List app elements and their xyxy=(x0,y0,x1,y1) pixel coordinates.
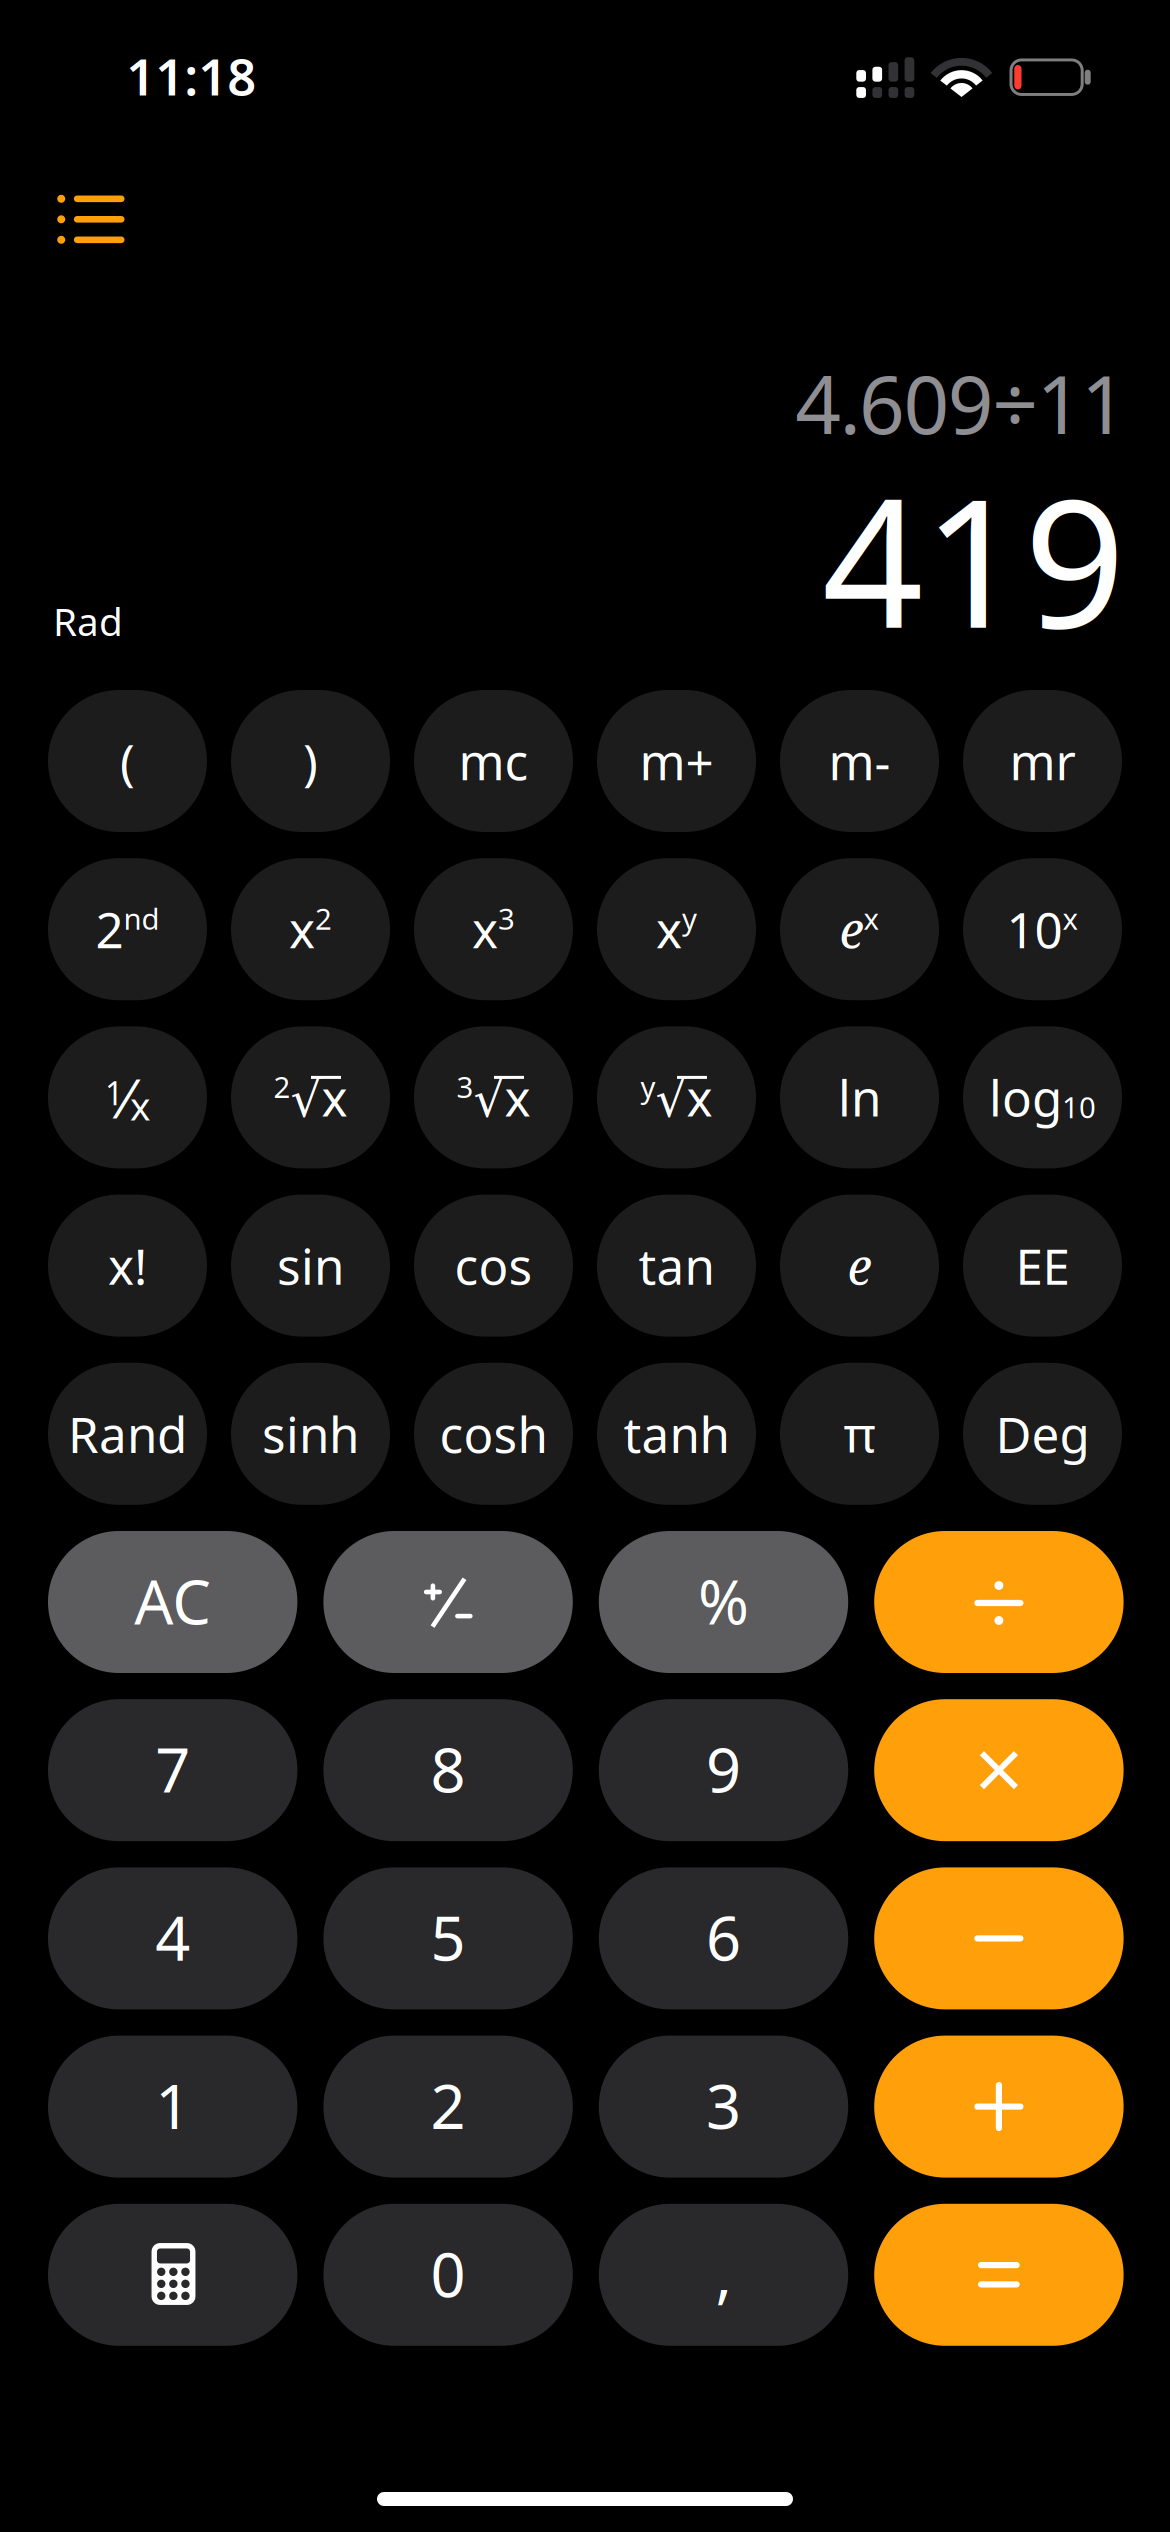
button[interactable]: ln xyxy=(780,1026,939,1168)
button[interactable]: m+ xyxy=(597,690,756,832)
staticText: 5 xyxy=(431,1896,466,1978)
button[interactable]: Rand xyxy=(48,1363,207,1505)
staticText: 419 xyxy=(822,441,1125,677)
staticText: Deg xyxy=(995,1401,1089,1466)
button[interactable]: x! xyxy=(48,1195,207,1337)
staticText: 2√x xyxy=(273,1065,347,1130)
button[interactable]: log10 xyxy=(963,1026,1122,1168)
button[interactable]: 2nd xyxy=(48,858,207,1000)
staticText: sinh xyxy=(262,1401,359,1466)
button[interactable]: AC xyxy=(48,1531,297,1673)
staticText: 9 xyxy=(706,1728,741,1809)
staticText: sin xyxy=(277,1233,344,1298)
button[interactable]: m- xyxy=(780,690,939,832)
button[interactable]: tan xyxy=(597,1195,756,1337)
button[interactable]: 10x xyxy=(963,858,1122,1000)
staticText: m- xyxy=(828,728,890,794)
staticText: 2 xyxy=(431,2064,466,2146)
staticText: ex xyxy=(839,896,879,962)
staticText: 4 xyxy=(155,1896,190,1978)
button[interactable]: 2 xyxy=(323,2036,573,2178)
button[interactable]: Multiply xyxy=(874,1699,1124,1841)
staticText: , xyxy=(715,2233,731,2314)
staticText: 1⁄x xyxy=(105,1061,150,1134)
staticText: tanh xyxy=(623,1401,729,1466)
button[interactable]: 1⁄x xyxy=(48,1026,207,1168)
button[interactable]: π xyxy=(780,1363,939,1505)
button[interactable]: Divide xyxy=(874,1531,1124,1673)
staticText: AC xyxy=(134,1560,211,1641)
staticText: y√x xyxy=(640,1065,712,1130)
staticText: 10x xyxy=(1006,896,1078,962)
staticText: 6 xyxy=(706,1896,741,1978)
staticText: ) xyxy=(303,728,318,794)
button[interactable]: , xyxy=(599,2204,848,2346)
button[interactable]: Equals xyxy=(874,2204,1124,2346)
button[interactable]: 8 xyxy=(323,1699,573,1841)
staticText: 2nd xyxy=(95,896,159,962)
staticText: 11:18 xyxy=(126,42,256,109)
button[interactable]: 0 xyxy=(323,2204,573,2346)
staticText: 0 xyxy=(431,2233,466,2314)
staticText: 3 xyxy=(706,2064,741,2146)
button[interactable]: sin xyxy=(231,1195,390,1337)
button[interactable]: Plus xyxy=(874,2036,1124,2178)
button[interactable]: cosh xyxy=(414,1363,573,1505)
staticText: cos xyxy=(454,1233,532,1298)
staticText: m+ xyxy=(639,728,713,794)
button[interactable]: 3√x xyxy=(414,1026,573,1168)
staticText: ln xyxy=(838,1065,881,1130)
button[interactable]: mc xyxy=(414,690,573,832)
staticText: Rand xyxy=(68,1401,187,1466)
staticText: 7 xyxy=(155,1728,190,1809)
button[interactable]: ) xyxy=(231,690,390,832)
button[interactable]: 7 xyxy=(48,1699,297,1841)
staticText: % xyxy=(698,1560,749,1641)
button[interactable]: 9 xyxy=(599,1699,848,1841)
staticText: x3 xyxy=(472,896,515,962)
staticText: 4.609÷11 xyxy=(795,350,1127,456)
staticText: Rad xyxy=(53,595,123,647)
button[interactable]: xy xyxy=(597,858,756,1000)
staticText: x! xyxy=(108,1233,147,1298)
button[interactable]: % xyxy=(599,1531,848,1673)
button[interactable]: tanh xyxy=(597,1363,756,1505)
button[interactable]: y√x xyxy=(597,1026,756,1168)
button[interactable]: e xyxy=(780,1195,939,1337)
staticText: xy xyxy=(656,896,697,962)
button[interactable]: 2√x xyxy=(231,1026,390,1168)
button[interactable]: Basic calculator xyxy=(48,2204,297,2346)
button[interactable]: 5 xyxy=(323,1867,573,2009)
button[interactable]: x2 xyxy=(231,858,390,1000)
staticText: tan xyxy=(638,1233,714,1298)
button[interactable]: x3 xyxy=(414,858,573,1000)
staticText: π xyxy=(843,1401,875,1466)
button[interactable]: History xyxy=(23,161,158,278)
staticText: e xyxy=(847,1232,871,1299)
staticText: mr xyxy=(1009,728,1075,794)
button[interactable]: 1 xyxy=(48,2036,297,2178)
button[interactable]: Deg xyxy=(963,1363,1122,1505)
button[interactable]: sinh xyxy=(231,1363,390,1505)
staticText: x2 xyxy=(289,896,332,962)
staticText: 1 xyxy=(155,2064,190,2146)
button[interactable]: Plus minus xyxy=(323,1531,573,1673)
button[interactable]: ( xyxy=(48,690,207,832)
button[interactable]: EE xyxy=(963,1195,1122,1337)
button[interactable]: 6 xyxy=(599,1867,848,2009)
staticText: mc xyxy=(458,728,528,794)
button[interactable]: 4 xyxy=(48,1867,297,2009)
button[interactable]: Minus xyxy=(874,1867,1124,2009)
staticText: 3√x xyxy=(456,1065,530,1130)
button[interactable]: mr xyxy=(963,690,1122,832)
button[interactable]: ex xyxy=(780,858,939,1000)
staticText: 8 xyxy=(431,1728,466,1809)
staticText: EE xyxy=(1015,1233,1069,1298)
button[interactable]: 3 xyxy=(599,2036,848,2178)
staticText: log10 xyxy=(989,1065,1096,1130)
staticText: cosh xyxy=(439,1401,547,1466)
button[interactable]: cos xyxy=(414,1195,573,1337)
staticText: ( xyxy=(120,728,135,794)
